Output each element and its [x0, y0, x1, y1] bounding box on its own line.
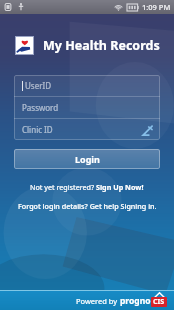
- button[interactable]: Forgot login details? Get help Signing i…: [0, 201, 174, 211]
- staticText: 1:09 PM: [142, 2, 171, 12]
- button[interactable]: Edit Clinic ID: [140, 123, 154, 137]
- staticText: Forgot login details? Get help Signing i…: [18, 201, 157, 211]
- staticText: Clinic ID: [22, 124, 53, 135]
- staticText: Sign Up Now!: [96, 182, 144, 192]
- staticText: UserID: [25, 80, 52, 91]
- staticText: progno: [120, 295, 151, 307]
- staticText: CIS: [153, 297, 165, 307]
- button[interactable]: Not yet registered?: [0, 182, 174, 192]
- button[interactable]: Login: [14, 149, 160, 169]
- button[interactable]: UserID: [14, 75, 160, 96]
- staticText: Password: [22, 102, 59, 113]
- staticText: Powered by: [76, 296, 120, 306]
- button[interactable]: Clinic ID: [14, 119, 160, 140]
- staticText: Login: [75, 153, 100, 165]
- button[interactable]: Password: [14, 97, 160, 118]
- staticText: My Health Records: [43, 37, 160, 54]
- staticText: Not yet registered?: [30, 182, 96, 192]
